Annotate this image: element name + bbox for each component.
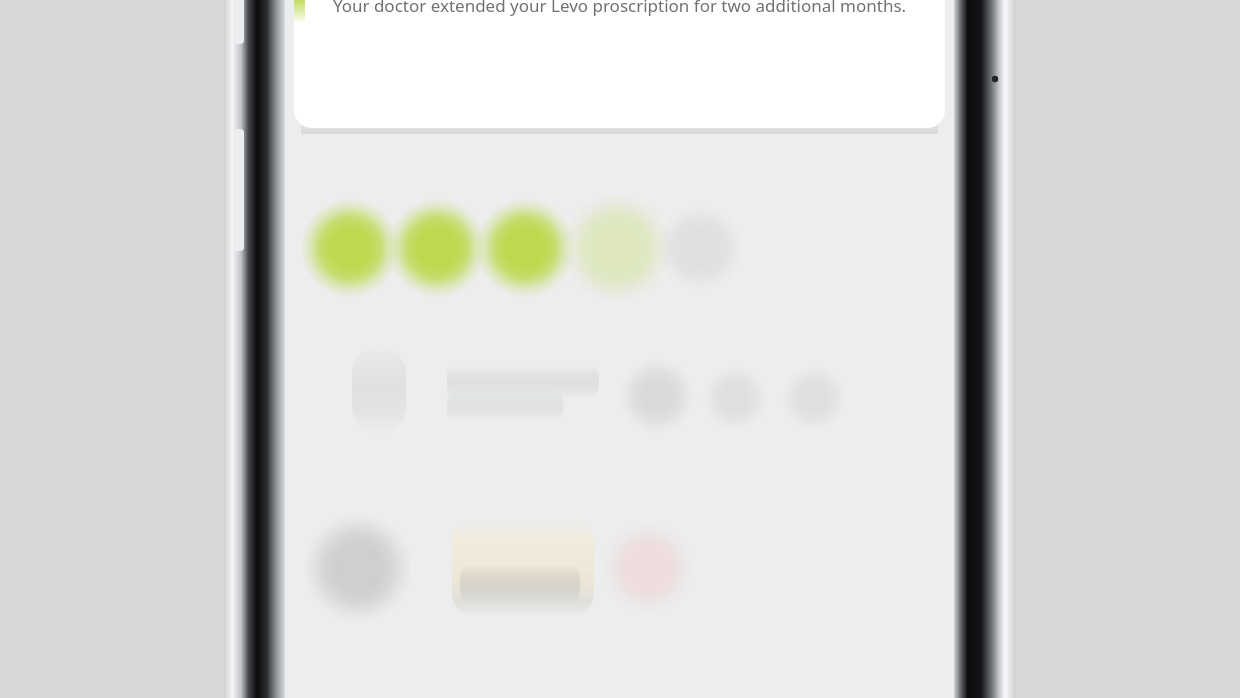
staticText: Your doctor extended your Levo proscript… (324, 0, 915, 17)
button[interactable]: Prescription notification (285, 0, 954, 134)
